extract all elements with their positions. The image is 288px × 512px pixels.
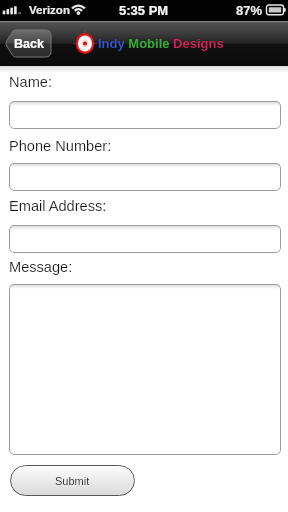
staticText: Back bbox=[14, 37, 44, 51]
button[interactable]: Back bbox=[5, 30, 51, 57]
staticText: Name: bbox=[9, 74, 52, 90]
staticText: Phone Number: bbox=[9, 138, 112, 154]
button[interactable] bbox=[9, 225, 281, 253]
staticText: Message: bbox=[9, 259, 73, 275]
staticText: 5:35 PM bbox=[119, 3, 169, 18]
staticText: 87% bbox=[236, 3, 263, 18]
staticText: Verizon bbox=[29, 4, 70, 17]
staticText: Email Address: bbox=[9, 198, 107, 214]
staticText: Submit bbox=[55, 475, 90, 487]
button[interactable]: Submit bbox=[10, 465, 135, 496]
button[interactable] bbox=[9, 284, 281, 455]
button[interactable] bbox=[9, 163, 281, 191]
button[interactable] bbox=[9, 101, 281, 129]
staticText: Indy Mobile Designs bbox=[98, 36, 224, 51]
